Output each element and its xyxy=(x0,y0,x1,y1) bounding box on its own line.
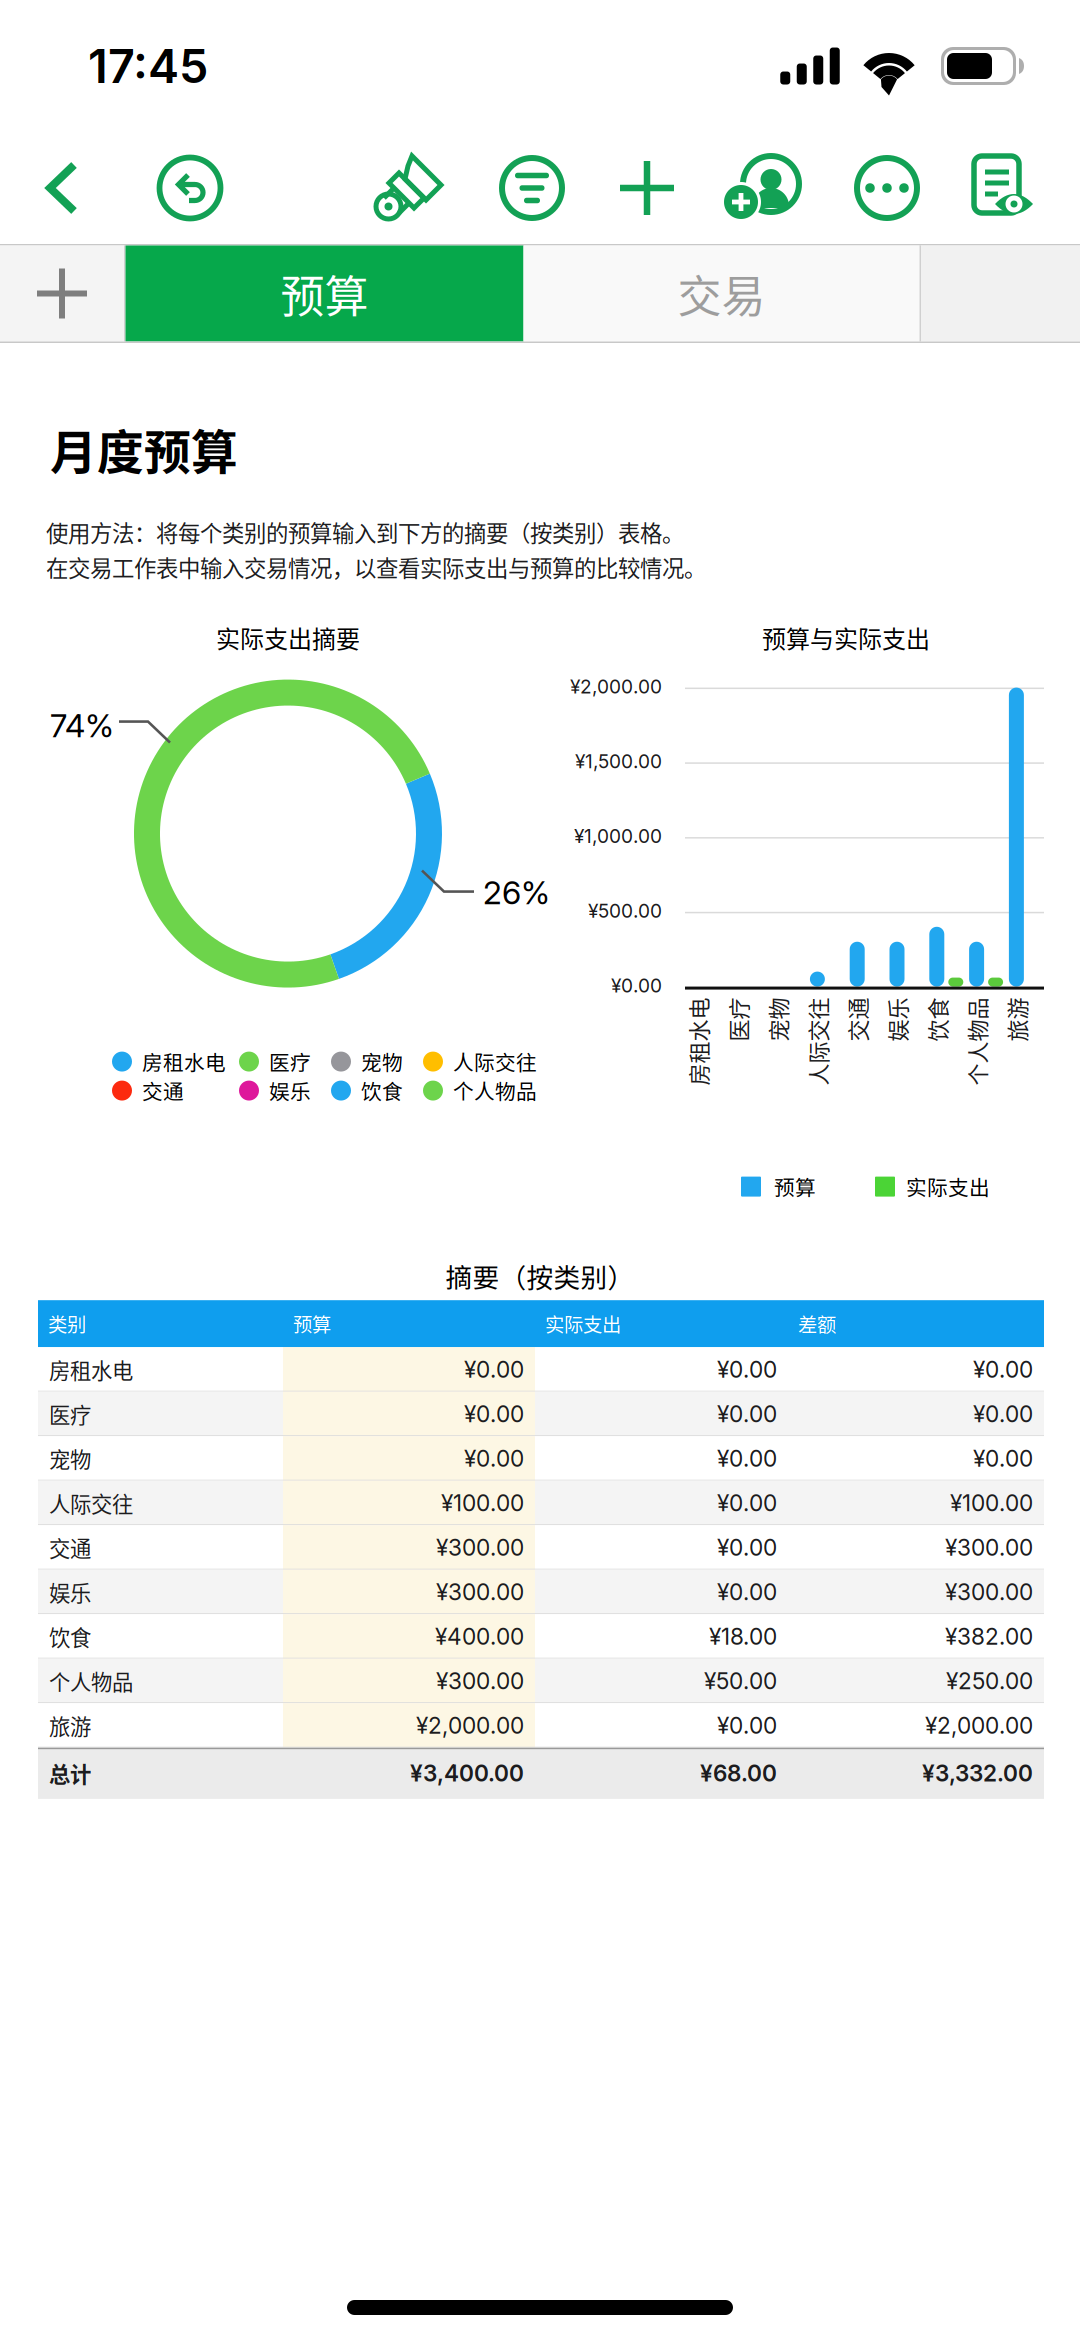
staticText: 预算 xyxy=(774,1172,816,1201)
button[interactable]: View options xyxy=(960,138,1050,238)
staticText: ¥0.00 xyxy=(717,1356,777,1383)
staticText: ¥100.00 xyxy=(441,1489,524,1517)
staticText: ¥0.00 xyxy=(973,1356,1033,1383)
staticText: 饮食 xyxy=(361,1076,403,1105)
staticText: ¥300.00 xyxy=(945,1578,1033,1606)
button[interactable]: Collaborate xyxy=(716,138,806,238)
staticText: ¥0.00 xyxy=(717,1712,777,1739)
staticText: ¥300.00 xyxy=(436,1534,524,1561)
staticText: 宠物 xyxy=(361,1047,403,1076)
staticText: 医疗 xyxy=(49,1398,91,1429)
staticText: ¥0.00 xyxy=(717,1400,777,1428)
staticText: ¥0.00 xyxy=(717,1534,777,1561)
staticText: 饮食 xyxy=(968,1057,1012,1088)
staticText: 摘要（按类别） xyxy=(445,1257,634,1295)
staticText: 饮食 xyxy=(49,1621,91,1652)
staticText: ¥2,000.00 xyxy=(925,1712,1033,1739)
staticText: ¥2,000.00 xyxy=(416,1712,524,1739)
staticText: 实际支出 xyxy=(545,1310,621,1338)
staticText: 实际支出 xyxy=(906,1172,990,1201)
staticText: 总计 xyxy=(49,1758,91,1789)
staticText: 交易 xyxy=(677,262,765,325)
staticText: 预算 xyxy=(293,1310,331,1338)
staticText: 预算与实际支出 xyxy=(762,620,930,655)
staticText: 个人物品 xyxy=(49,1665,133,1696)
staticText: ¥3,400.00 xyxy=(410,1759,524,1787)
staticText: 娱乐 xyxy=(49,1576,91,1607)
staticText: ¥0.00 xyxy=(717,1445,777,1472)
staticText: 实际支出摘要 xyxy=(216,620,360,655)
staticText: 宠物 xyxy=(49,1443,91,1474)
staticText: ¥68.00 xyxy=(700,1759,777,1787)
button[interactable]: More xyxy=(842,138,932,238)
staticText: 个人物品 xyxy=(453,1076,537,1105)
staticText: 类别 xyxy=(48,1310,86,1338)
staticText: 人际交往 xyxy=(453,1047,537,1076)
staticText: ¥2,000.00 xyxy=(570,675,662,698)
staticText: 17:45 xyxy=(88,38,208,94)
button[interactable]: Insert xyxy=(602,138,692,238)
staticText: ¥0.00 xyxy=(611,974,662,997)
staticText: ¥300.00 xyxy=(945,1534,1033,1561)
staticText: 人际交往 xyxy=(49,1487,133,1518)
staticText: 月度预算 xyxy=(50,415,238,483)
staticText: ¥500.00 xyxy=(588,899,662,922)
button[interactable]: Undo xyxy=(145,138,235,238)
staticText: 人际交往 xyxy=(804,1057,892,1088)
staticText: 预算 xyxy=(280,262,368,325)
staticText: ¥18.00 xyxy=(709,1623,777,1650)
staticText: ¥0.00 xyxy=(973,1445,1033,1472)
staticText: 房租水电 xyxy=(685,1057,773,1088)
staticText: 房租水电 xyxy=(142,1047,226,1076)
staticText: ¥382.00 xyxy=(945,1623,1033,1650)
staticText: ¥0.00 xyxy=(464,1400,524,1428)
staticText: ¥300.00 xyxy=(436,1578,524,1606)
staticText: ¥0.00 xyxy=(464,1445,524,1472)
staticText: 娱乐 xyxy=(928,1057,972,1088)
button[interactable]: Back xyxy=(17,138,107,238)
button[interactable]: Format xyxy=(367,138,457,238)
staticText: 差额 xyxy=(798,1310,836,1338)
staticText: 26% xyxy=(483,873,550,912)
staticText: ¥250.00 xyxy=(946,1667,1033,1695)
staticText: ¥0.00 xyxy=(464,1356,524,1383)
staticText: ¥0.00 xyxy=(717,1578,777,1606)
staticText: 使用方法：将每个类别的预算输入到下方的摘要（按类别）表格。 xyxy=(46,516,684,548)
button[interactable]: 预算 xyxy=(125,245,523,341)
staticText: 74% xyxy=(50,706,114,745)
staticText: ¥3,332.00 xyxy=(922,1759,1033,1787)
staticText: 个人物品 xyxy=(964,1057,1052,1088)
staticText: ¥400.00 xyxy=(435,1623,524,1650)
button[interactable]: Add sheet xyxy=(0,245,124,341)
staticText: 房租水电 xyxy=(49,1354,133,1385)
staticText: ¥300.00 xyxy=(436,1667,524,1695)
staticText: ¥1,500.00 xyxy=(575,750,662,773)
staticText: 旅游 xyxy=(49,1710,91,1741)
staticText: ¥100.00 xyxy=(950,1489,1033,1517)
staticText: ¥0.00 xyxy=(973,1400,1033,1428)
staticText: 宠物 xyxy=(809,1057,853,1088)
staticText: ¥50.00 xyxy=(704,1667,777,1695)
staticText: 在交易工作表中输入交易情况，以查看实际支出与预算的比较情况。 xyxy=(46,551,706,583)
staticText: 交通 xyxy=(49,1532,91,1563)
button[interactable]: 交易 xyxy=(523,245,919,341)
staticText: 交通 xyxy=(142,1076,184,1105)
staticText: 娱乐 xyxy=(269,1076,311,1105)
staticText: 医疗 xyxy=(769,1057,813,1088)
staticText: ¥0.00 xyxy=(717,1489,777,1517)
button[interactable]: Organize xyxy=(487,138,577,238)
staticText: ¥1,000.00 xyxy=(574,824,662,848)
staticText: 医疗 xyxy=(269,1047,311,1076)
